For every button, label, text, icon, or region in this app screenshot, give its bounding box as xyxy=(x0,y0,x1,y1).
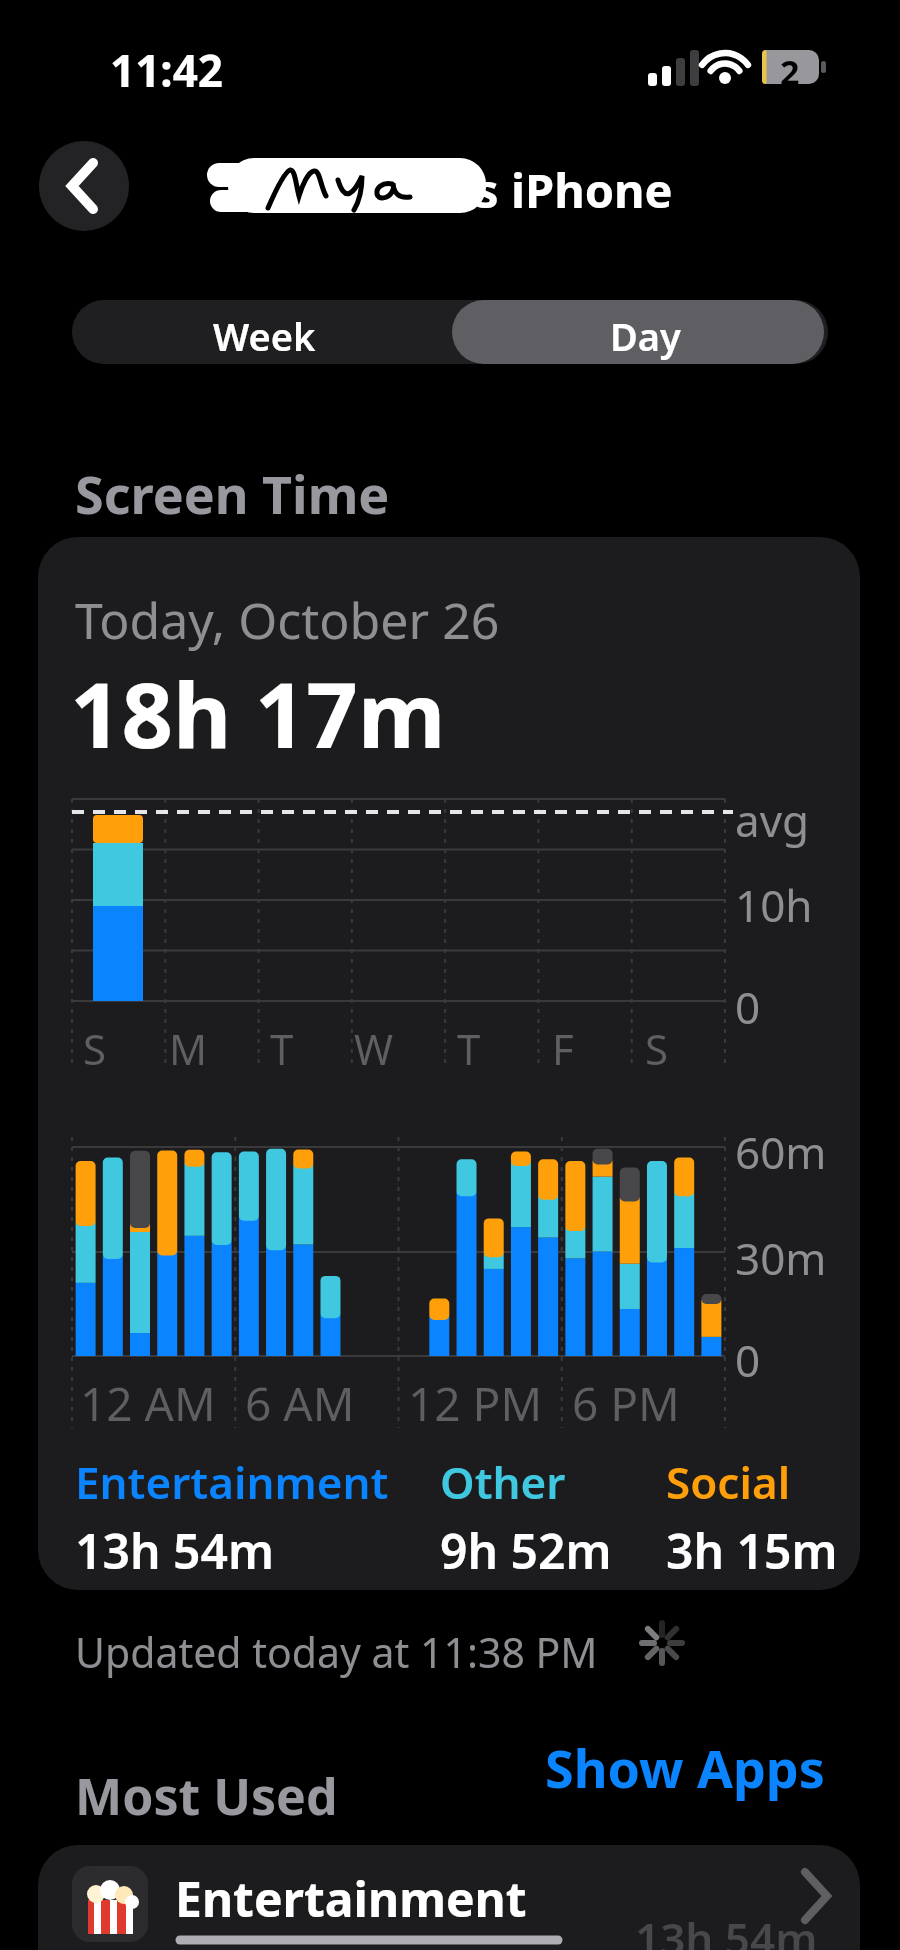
staticText: Screen Time xyxy=(75,458,390,529)
staticText: Most Used xyxy=(75,1762,338,1830)
staticText: Updated today at 11:38 PM xyxy=(75,1624,598,1680)
staticText: S xyxy=(83,1020,107,1077)
staticText: 6 PM xyxy=(572,1372,680,1435)
staticText: T xyxy=(457,1020,481,1077)
button[interactable] xyxy=(38,1845,860,1950)
staticText: 30m xyxy=(735,1228,827,1288)
staticText: 18h 17m xyxy=(70,652,446,775)
staticText: 13h 54m xyxy=(635,1908,818,1950)
staticText: 6 AM xyxy=(245,1372,355,1435)
staticText: Entertainment xyxy=(75,1452,389,1512)
staticText: 13h 54m xyxy=(75,1518,275,1583)
staticText: S xyxy=(645,1020,669,1077)
staticText: Today, October 26 xyxy=(75,586,500,654)
staticText: 0 xyxy=(735,977,761,1037)
staticText: 12 PM xyxy=(408,1372,543,1435)
staticText: 10h xyxy=(735,875,813,935)
button[interactable] xyxy=(72,300,450,364)
button[interactable]: Show Apps xyxy=(545,1732,825,1803)
staticText: Week xyxy=(213,310,316,362)
staticText: 9h 52m xyxy=(440,1518,612,1583)
staticText: M xyxy=(169,1020,208,1077)
staticText: Other xyxy=(440,1452,566,1512)
staticText: 3h 15m xyxy=(666,1518,838,1583)
staticText: 0 xyxy=(735,1330,761,1390)
staticText: T xyxy=(270,1020,294,1077)
staticText: 12 AM xyxy=(80,1372,216,1435)
staticText: 2 xyxy=(780,49,800,95)
button[interactable] xyxy=(452,300,824,364)
staticText: Day xyxy=(610,310,681,362)
staticText: 11:42 xyxy=(110,40,224,100)
staticText: avg xyxy=(735,790,810,850)
staticText: Entertainment xyxy=(175,1866,527,1931)
staticText: 's iPhone xyxy=(464,158,673,222)
staticText: Show Apps xyxy=(545,1732,825,1803)
staticText: F xyxy=(552,1020,574,1077)
staticText: Social xyxy=(666,1452,791,1512)
button[interactable] xyxy=(39,141,129,231)
staticText: 60m xyxy=(735,1122,827,1182)
staticText: W xyxy=(354,1020,394,1077)
